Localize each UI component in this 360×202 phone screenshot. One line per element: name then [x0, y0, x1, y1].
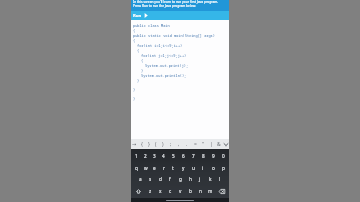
staticText: u	[192, 165, 195, 171]
button[interactable]: n	[195, 186, 205, 196]
staticText: ,	[178, 141, 180, 148]
button[interactable]: (	[152, 139, 159, 149]
button[interactable]: r	[159, 163, 168, 173]
button[interactable]: In this screen you'll learn to run your …	[131, 0, 229, 11]
button[interactable]: →	[131, 139, 138, 149]
button[interactable]: 6	[178, 151, 188, 161]
button[interactable]: &	[215, 139, 223, 149]
staticText: →	[132, 141, 137, 147]
staticText: 2	[144, 153, 147, 159]
staticText: d	[159, 176, 162, 182]
button[interactable]: c	[165, 186, 175, 196]
staticText: public class Main	[133, 23, 170, 28]
button[interactable]: ,	[175, 139, 183, 149]
staticText: System.out.print(j);	[145, 63, 189, 68]
button[interactable]: Expand suggestions	[223, 139, 229, 149]
staticText: r	[163, 165, 165, 171]
button[interactable]: 3	[150, 151, 159, 161]
button[interactable]: )	[159, 139, 167, 149]
staticText: {	[133, 28, 136, 33]
button[interactable]: o	[208, 163, 218, 173]
button[interactable]: m	[205, 186, 215, 196]
button[interactable]: p	[218, 163, 228, 173]
button[interactable]: 2	[141, 151, 150, 161]
button[interactable]: f	[165, 174, 175, 184]
button[interactable]: t	[168, 163, 178, 173]
button[interactable]: Home	[166, 200, 194, 201]
staticText: q	[135, 165, 138, 171]
button[interactable]: 5	[168, 151, 178, 161]
button[interactable]: }	[145, 139, 152, 149]
staticText: h	[189, 176, 192, 182]
staticText: e	[153, 165, 156, 171]
staticText: .	[186, 141, 188, 148]
button[interactable]: u	[188, 163, 198, 173]
button[interactable]: s	[145, 174, 155, 184]
button[interactable]: 4	[159, 151, 168, 161]
staticText: g	[179, 176, 182, 182]
staticText: n	[199, 188, 202, 194]
staticText: "	[202, 141, 205, 148]
staticText: }	[137, 78, 140, 83]
staticText: {	[133, 38, 136, 43]
button[interactable]: Shift	[132, 186, 145, 196]
staticText: 0	[222, 153, 225, 159]
button[interactable]: 9	[208, 151, 218, 161]
staticText: t	[172, 165, 174, 171]
button[interactable]: 8	[198, 151, 208, 161]
staticText: 9	[212, 153, 215, 159]
staticText: l	[219, 176, 221, 182]
staticText: }	[133, 87, 136, 92]
staticText: 5	[172, 153, 175, 159]
staticText: {	[137, 48, 140, 53]
staticText: for(int j=1;j<=9;j++)	[141, 53, 187, 58]
staticText: y	[182, 165, 185, 171]
button[interactable]: x	[155, 186, 165, 196]
staticText: s	[149, 176, 152, 182]
button[interactable]: 0	[218, 151, 228, 161]
button[interactable]: q	[132, 163, 141, 173]
button[interactable]: z	[145, 186, 155, 196]
staticText: public static void main(String[] args)	[133, 33, 215, 38]
button[interactable]: h	[185, 174, 195, 184]
staticText: i	[202, 165, 204, 171]
staticText: )	[162, 141, 164, 148]
button[interactable]: b	[185, 186, 195, 196]
staticText: o	[212, 165, 215, 171]
button[interactable]: 1	[132, 151, 141, 161]
button[interactable]: ;	[167, 139, 175, 149]
button[interactable]: .	[183, 139, 191, 149]
staticText: f	[169, 176, 171, 182]
staticText: m	[208, 188, 213, 194]
staticText: 7	[192, 153, 195, 159]
staticText: }	[141, 68, 144, 73]
button[interactable]: g	[175, 174, 185, 184]
button[interactable]: 7	[188, 151, 198, 161]
staticText: |	[210, 141, 213, 148]
button[interactable]: "	[199, 139, 207, 149]
staticText: c	[169, 188, 172, 194]
button[interactable]: j	[195, 174, 205, 184]
button[interactable]: i	[198, 163, 208, 173]
staticText: 4	[162, 153, 165, 159]
staticText: (	[155, 141, 157, 148]
staticText: for(int i=1;i<=9;i++)	[137, 43, 183, 48]
staticText: 6	[182, 153, 185, 159]
button[interactable]: a	[135, 174, 145, 184]
button[interactable]: |	[207, 139, 215, 149]
button[interactable]: k	[205, 174, 215, 184]
button[interactable]: Backspace	[215, 186, 228, 196]
button[interactable]: y	[178, 163, 188, 173]
button[interactable]: d	[155, 174, 165, 184]
staticText: k	[209, 176, 212, 182]
button[interactable]: {	[138, 139, 145, 149]
button[interactable]: v	[175, 186, 185, 196]
button[interactable]: Run	[131, 11, 229, 20]
staticText: =	[194, 141, 197, 148]
button[interactable]: =	[191, 139, 199, 149]
button[interactable]: l	[215, 174, 225, 184]
staticText: x	[159, 188, 162, 194]
button[interactable]: e	[150, 163, 159, 173]
staticText: Press Run to run the Java program below.	[133, 4, 196, 8]
button[interactable]: w	[141, 163, 150, 173]
